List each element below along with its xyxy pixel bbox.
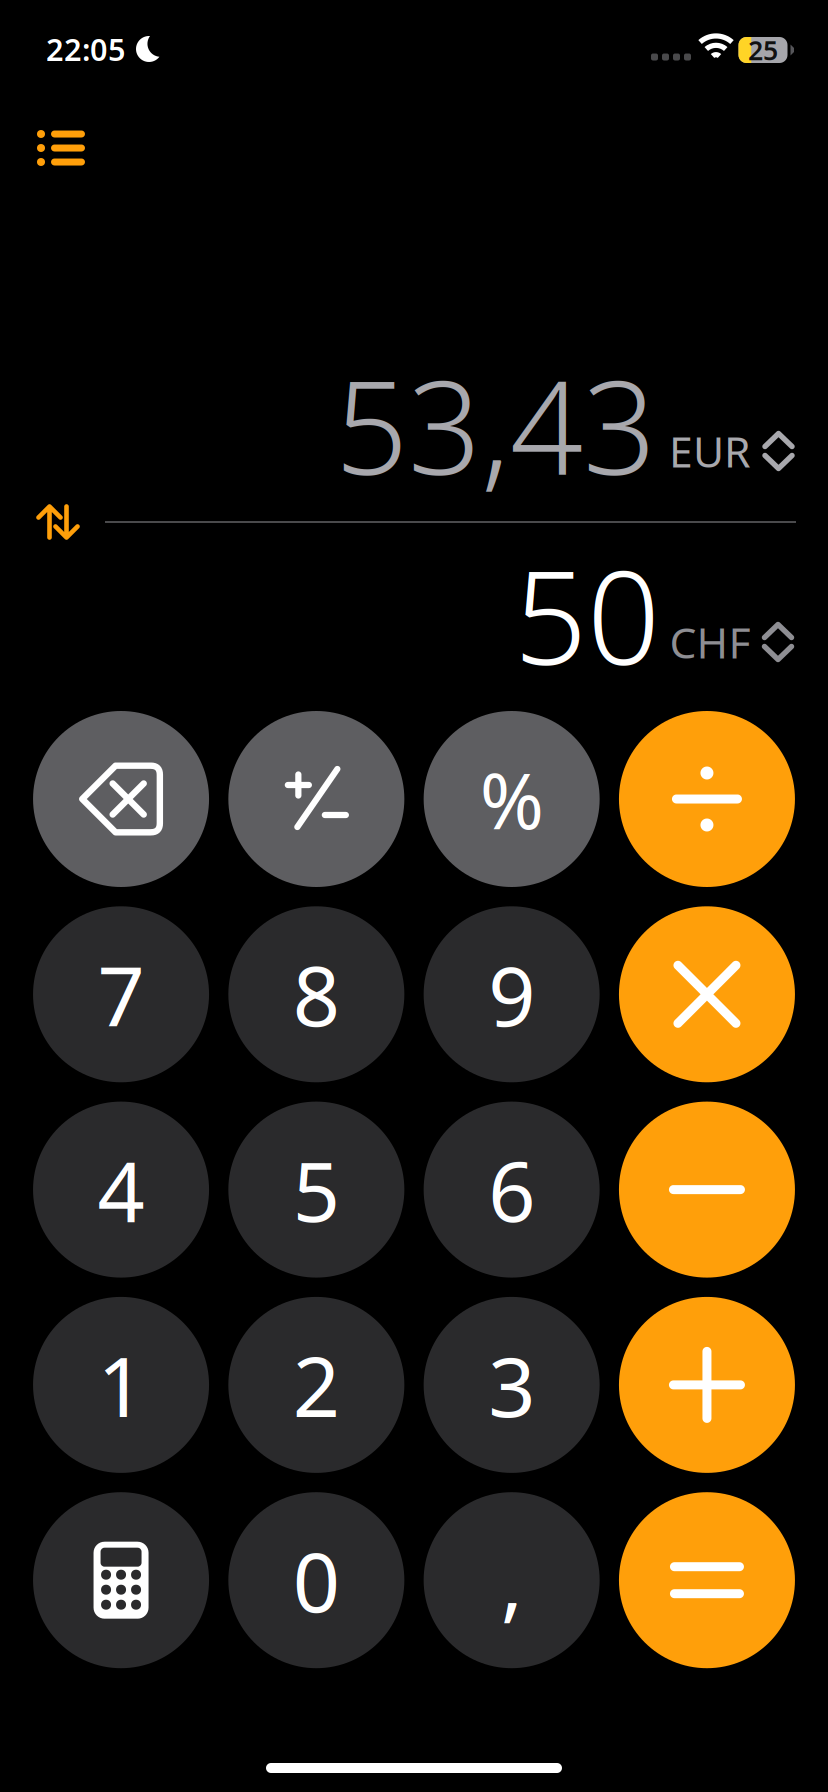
button[interactable]: Currency list [11,103,111,193]
staticText: 7 [98,939,145,1049]
button[interactable]: , [424,1492,600,1668]
staticText: 9 [488,939,535,1049]
staticText: 2 [293,1330,340,1440]
button[interactable]: 2 [228,1297,404,1473]
button[interactable]: Multiply [619,906,795,1082]
staticText: 6 [488,1135,535,1244]
button[interactable]: 1 [33,1297,209,1473]
staticText: % [480,748,544,850]
button[interactable]: 4 [33,1102,209,1278]
button[interactable]: 5 [228,1102,404,1278]
staticText: 4 [98,1135,145,1244]
staticText: EUR [669,423,751,479]
button[interactable]: Toggle sign [228,711,404,887]
button[interactable]: Add [619,1297,795,1473]
staticText: 3 [488,1330,535,1440]
staticText: 22:05 [46,29,126,69]
button[interactable]: 3 [424,1297,600,1473]
button[interactable]: Delete [33,711,209,887]
staticText: CHF [669,614,750,670]
button[interactable]: Choose currency EUR [661,407,803,495]
button[interactable]: Subtract [619,1102,795,1278]
staticText: 50 [514,530,660,700]
button[interactable]: 7 [33,906,209,1082]
staticText: 8 [293,939,340,1049]
button[interactable]: % [424,711,600,887]
button[interactable]: 9 [424,906,600,1082]
button[interactable]: 6 [424,1102,600,1278]
button[interactable]: Choose currency CHF [661,598,802,686]
staticText: 1 [98,1330,145,1440]
staticText: 53,43 [335,340,656,510]
button[interactable]: Swap currencies [18,482,98,562]
staticText: , [501,1525,523,1635]
button[interactable]: Equals [619,1492,795,1668]
button[interactable]: Divide [619,711,795,887]
button[interactable]: 8 [228,906,404,1082]
staticText: 0 [293,1525,340,1635]
button[interactable]: Calculator [33,1492,209,1668]
button[interactable]: 0 [228,1492,404,1668]
staticText: 25 [748,32,778,68]
staticText: 5 [293,1135,340,1244]
